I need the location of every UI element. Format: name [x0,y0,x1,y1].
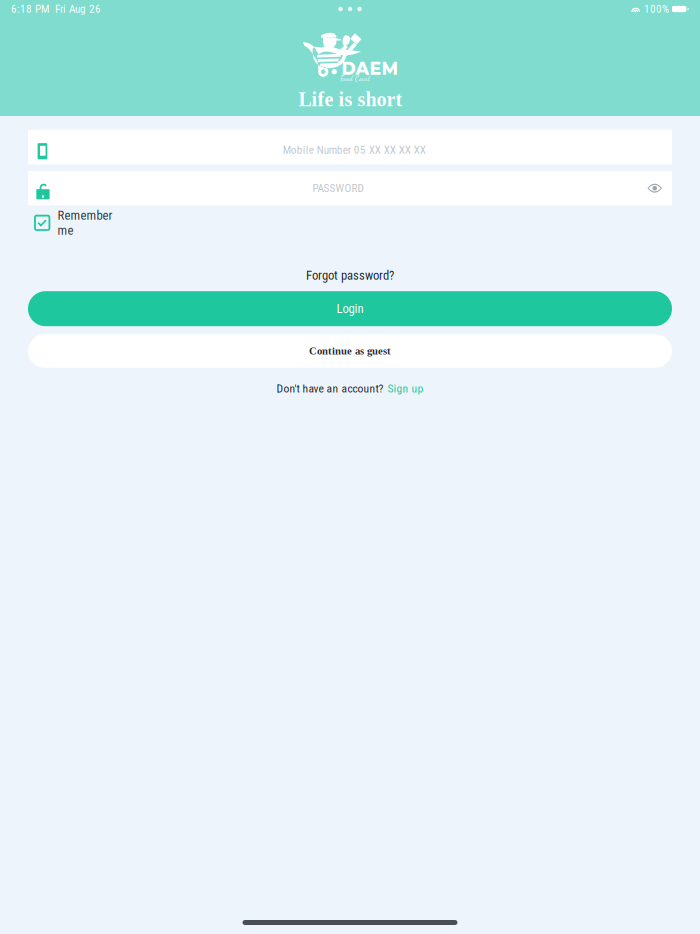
staticText: Don't have an account? [276,382,383,395]
staticText: Fri Aug 26 [55,2,101,15]
staticText: PASSWORD [312,182,363,195]
staticText: Mobile Number 05 XX XX XX XX [283,143,426,156]
staticText: Life is short [298,88,402,111]
button[interactable]: Remember me [35,213,139,233]
staticText: DAEM [341,58,398,79]
staticText: 100% [644,2,669,15]
button[interactable]: Sign up [383,382,423,395]
staticText: Remember me [57,208,112,238]
button[interactable]: Show password [637,172,672,205]
staticText: Forgot password? [306,268,394,283]
button[interactable]: Login [28,291,672,326]
staticText: Login [336,301,363,316]
staticText: Food Court [340,74,370,83]
staticText: Sign up [387,382,423,395]
button[interactable]: Forgot password? [296,263,404,288]
staticText: 6:18 PM [11,2,49,15]
staticText: Continue as guest [309,345,391,357]
button[interactable]: Continue as guest [28,334,672,368]
